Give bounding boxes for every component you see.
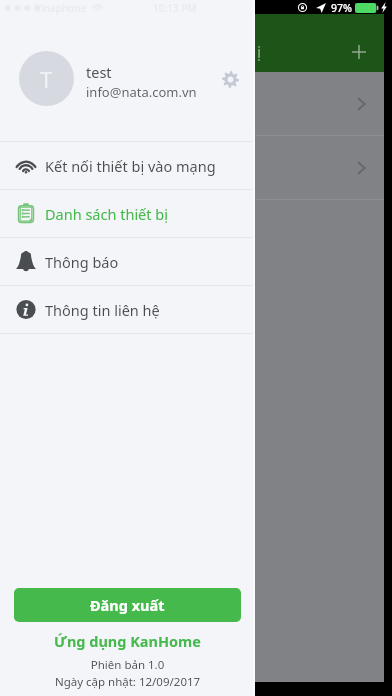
- staticText: Thông báo: [45, 252, 119, 272]
- staticText: Ứng dụng KanHome: [0, 631, 255, 651]
- staticText: test: [86, 62, 112, 82]
- staticText: Kết nối thiết bị vào mạng: [45, 156, 216, 176]
- staticText: info@nata.com.vn: [86, 83, 197, 101]
- button[interactable]: T: [0, 16, 255, 141]
- other: Add: [352, 45, 366, 59]
- button[interactable]: Settings: [212, 61, 248, 97]
- staticText: Danh sách thiết bị: [45, 204, 168, 224]
- button[interactable]: Danh sách thiết bị: [0, 190, 255, 237]
- button[interactable]: Thông tin liên hệ: [0, 286, 255, 333]
- staticText: Phiên bản 1.0: [0, 657, 255, 673]
- staticText: Ngày cập nhật: 12/09/2017: [0, 674, 255, 690]
- staticText: Thông tin liên hệ: [45, 300, 160, 320]
- staticText: Vinaphone: [35, 1, 87, 15]
- button[interactable]: Thông báo: [0, 238, 255, 285]
- staticText: T: [40, 64, 53, 94]
- button[interactable]: Kết nối thiết bị vào mạng: [0, 142, 255, 189]
- staticText: 10:13 PM: [153, 1, 197, 15]
- staticText: 97%: [331, 1, 352, 15]
- staticText: ị: [257, 41, 262, 63]
- button[interactable]: Đăng xuất: [14, 588, 241, 622]
- staticText: Đăng xuất: [90, 595, 165, 615]
